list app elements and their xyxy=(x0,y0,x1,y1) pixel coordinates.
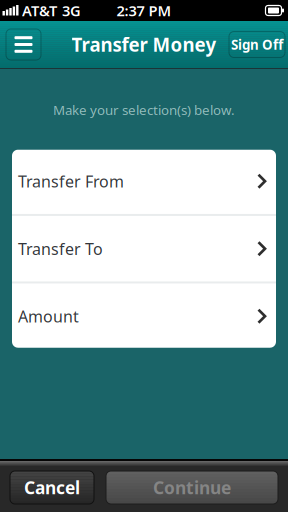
staticText: Transfer From xyxy=(18,171,124,192)
staticText: Make your selection(s) below. xyxy=(53,101,235,119)
button[interactable]: Cancel xyxy=(10,471,94,504)
button[interactable]: Transfer From xyxy=(12,148,276,214)
staticText: Transfer Money xyxy=(71,32,216,57)
staticText: 2:37 PM xyxy=(116,1,171,20)
button[interactable]: Sign Off xyxy=(229,31,285,57)
button[interactable]: Transfer To xyxy=(12,216,276,281)
staticText: Amount xyxy=(18,306,79,327)
staticText: AT&T xyxy=(22,1,57,20)
staticText: Transfer To xyxy=(18,238,103,259)
staticText: Sign Off xyxy=(231,36,283,53)
staticText: Continue xyxy=(153,476,231,499)
staticText: Cancel xyxy=(24,476,80,499)
staticText: 3G xyxy=(62,1,81,20)
button[interactable]: Amount xyxy=(12,283,276,349)
button[interactable]: Continue xyxy=(106,471,278,504)
button[interactable]: Menu xyxy=(6,29,41,60)
